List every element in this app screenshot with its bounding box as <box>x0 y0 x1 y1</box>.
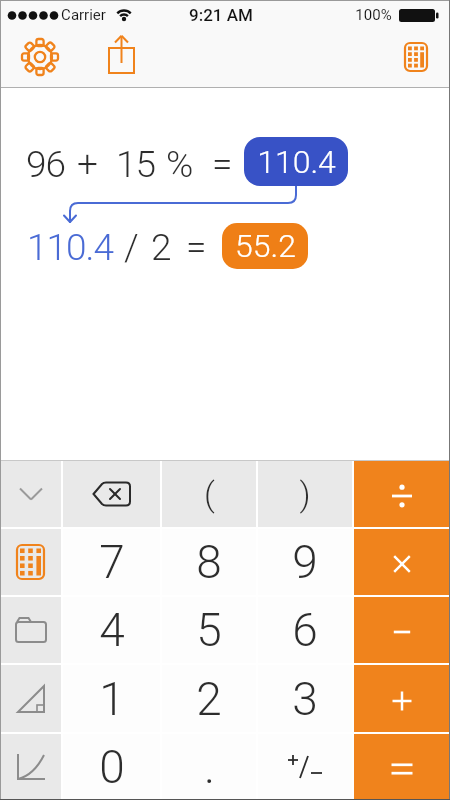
button[interactable] <box>0 529 61 595</box>
staticText: 96 <box>26 143 66 186</box>
staticText: 2 <box>151 226 171 269</box>
button[interactable]: ( <box>162 461 256 527</box>
button[interactable] <box>63 461 160 527</box>
button[interactable] <box>0 597 61 663</box>
staticText: ( <box>204 474 215 514</box>
button[interactable]: 6 <box>258 597 352 663</box>
button[interactable] <box>20 37 60 77</box>
button[interactable]: 110.4 <box>244 137 348 186</box>
button[interactable]: 2 <box>162 665 256 732</box>
button[interactable] <box>0 665 61 732</box>
button[interactable]: ) <box>258 461 352 527</box>
staticText: 0 <box>99 740 125 794</box>
button[interactable]: 9 <box>258 529 352 595</box>
staticText: ) <box>299 474 311 514</box>
button[interactable]: 5 <box>162 597 256 663</box>
staticText: 6 <box>292 603 318 657</box>
button[interactable]: 8 <box>162 529 256 595</box>
button[interactable] <box>0 734 61 800</box>
button[interactable] <box>354 597 450 663</box>
button[interactable]: 1 <box>63 665 160 732</box>
button[interactable] <box>354 665 450 732</box>
staticText: 9:21 AM <box>189 5 253 25</box>
staticText: 110.4 <box>257 143 336 181</box>
staticText: = <box>186 226 206 269</box>
staticText: 2 <box>196 672 222 726</box>
staticText: 9 <box>292 535 318 589</box>
staticText: 1 <box>99 672 125 726</box>
button[interactable]: 3 <box>258 665 352 732</box>
staticText: 55.2 <box>235 227 296 265</box>
staticText: 3 <box>292 672 318 726</box>
button[interactable] <box>354 529 450 595</box>
staticText: 110.4 <box>27 226 113 269</box>
staticText: . <box>204 740 215 794</box>
button[interactable]: 55.2 <box>222 223 308 269</box>
button[interactable] <box>101 35 143 77</box>
button[interactable]: 4 <box>63 597 160 663</box>
staticText: / <box>124 226 138 269</box>
staticText: + <box>77 143 97 186</box>
staticText: 4 <box>99 603 125 657</box>
staticText: 7 <box>99 535 125 589</box>
button[interactable] <box>258 734 352 800</box>
button[interactable] <box>354 461 450 527</box>
button[interactable]: . <box>162 734 256 800</box>
button[interactable] <box>0 461 61 527</box>
staticText: Carrier <box>61 6 106 24</box>
button[interactable]: 7 <box>63 529 160 595</box>
staticText: 5 <box>196 603 222 657</box>
staticText: 8 <box>196 535 222 589</box>
button[interactable] <box>354 734 450 800</box>
staticText: 15 <box>116 143 156 186</box>
button[interactable] <box>394 35 438 79</box>
staticText: = <box>212 143 232 186</box>
staticText: % <box>166 143 193 186</box>
staticText: 100% <box>355 6 392 24</box>
button[interactable]: 0 <box>63 734 160 800</box>
